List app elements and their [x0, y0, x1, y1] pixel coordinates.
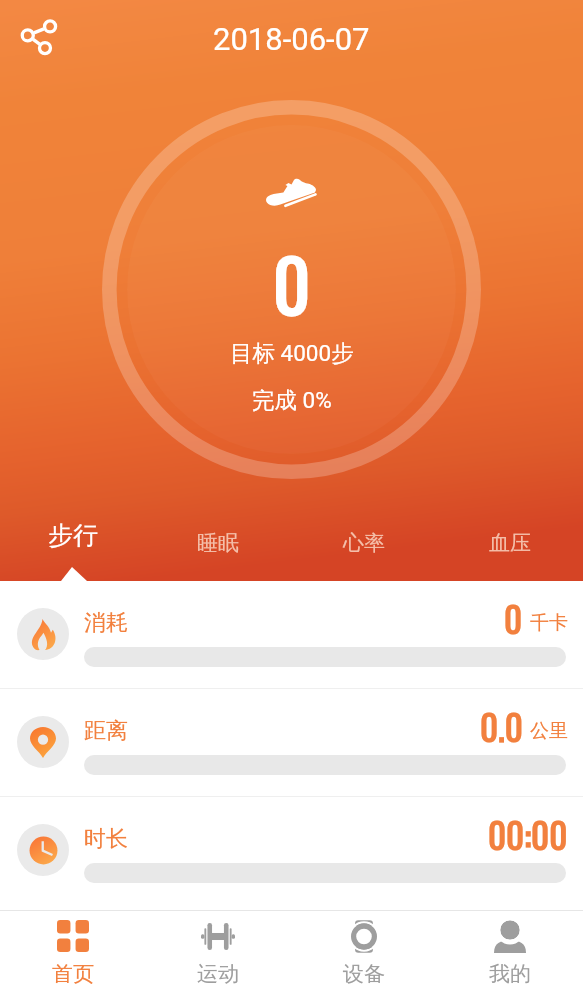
button[interactable]: Share: [5, 5, 73, 70]
staticText: 血压: [489, 530, 531, 556]
staticText: 睡眠: [197, 530, 239, 556]
staticText: 0: [504, 592, 523, 644]
button[interactable]: 运动: [145, 911, 291, 997]
staticText: 运动: [197, 961, 239, 987]
staticText: 完成 0%: [252, 386, 332, 414]
staticText: 2018-06-07: [213, 21, 370, 57]
button[interactable]: 设备: [291, 911, 437, 997]
button[interactable]: 我的: [437, 911, 583, 997]
button[interactable]: 消耗: [0, 581, 583, 688]
staticText: 距离: [84, 717, 128, 745]
staticText: 00:00: [488, 808, 568, 860]
staticText: 0: [273, 229, 311, 336]
button[interactable]: 首页: [0, 911, 145, 997]
button[interactable]: 时长: [0, 797, 583, 904]
staticText: 千卡: [530, 611, 568, 635]
button[interactable]: 睡眠: [145, 501, 291, 581]
staticText: 设备: [343, 961, 385, 987]
staticText: 时长: [84, 825, 128, 853]
button[interactable]: 距离: [0, 689, 583, 796]
staticText: 首页: [52, 961, 94, 987]
button[interactable]: 血压: [437, 501, 583, 581]
button[interactable]: 步行: [0, 501, 145, 581]
staticText: 目标 4000步: [230, 339, 354, 367]
staticText: 消耗: [84, 609, 128, 637]
staticText: 0.0: [480, 700, 523, 752]
staticText: 心率: [343, 530, 385, 556]
button[interactable]: 心率: [291, 501, 437, 581]
staticText: 公里: [530, 719, 568, 743]
staticText: 步行: [48, 520, 98, 551]
staticText: 我的: [489, 961, 531, 987]
